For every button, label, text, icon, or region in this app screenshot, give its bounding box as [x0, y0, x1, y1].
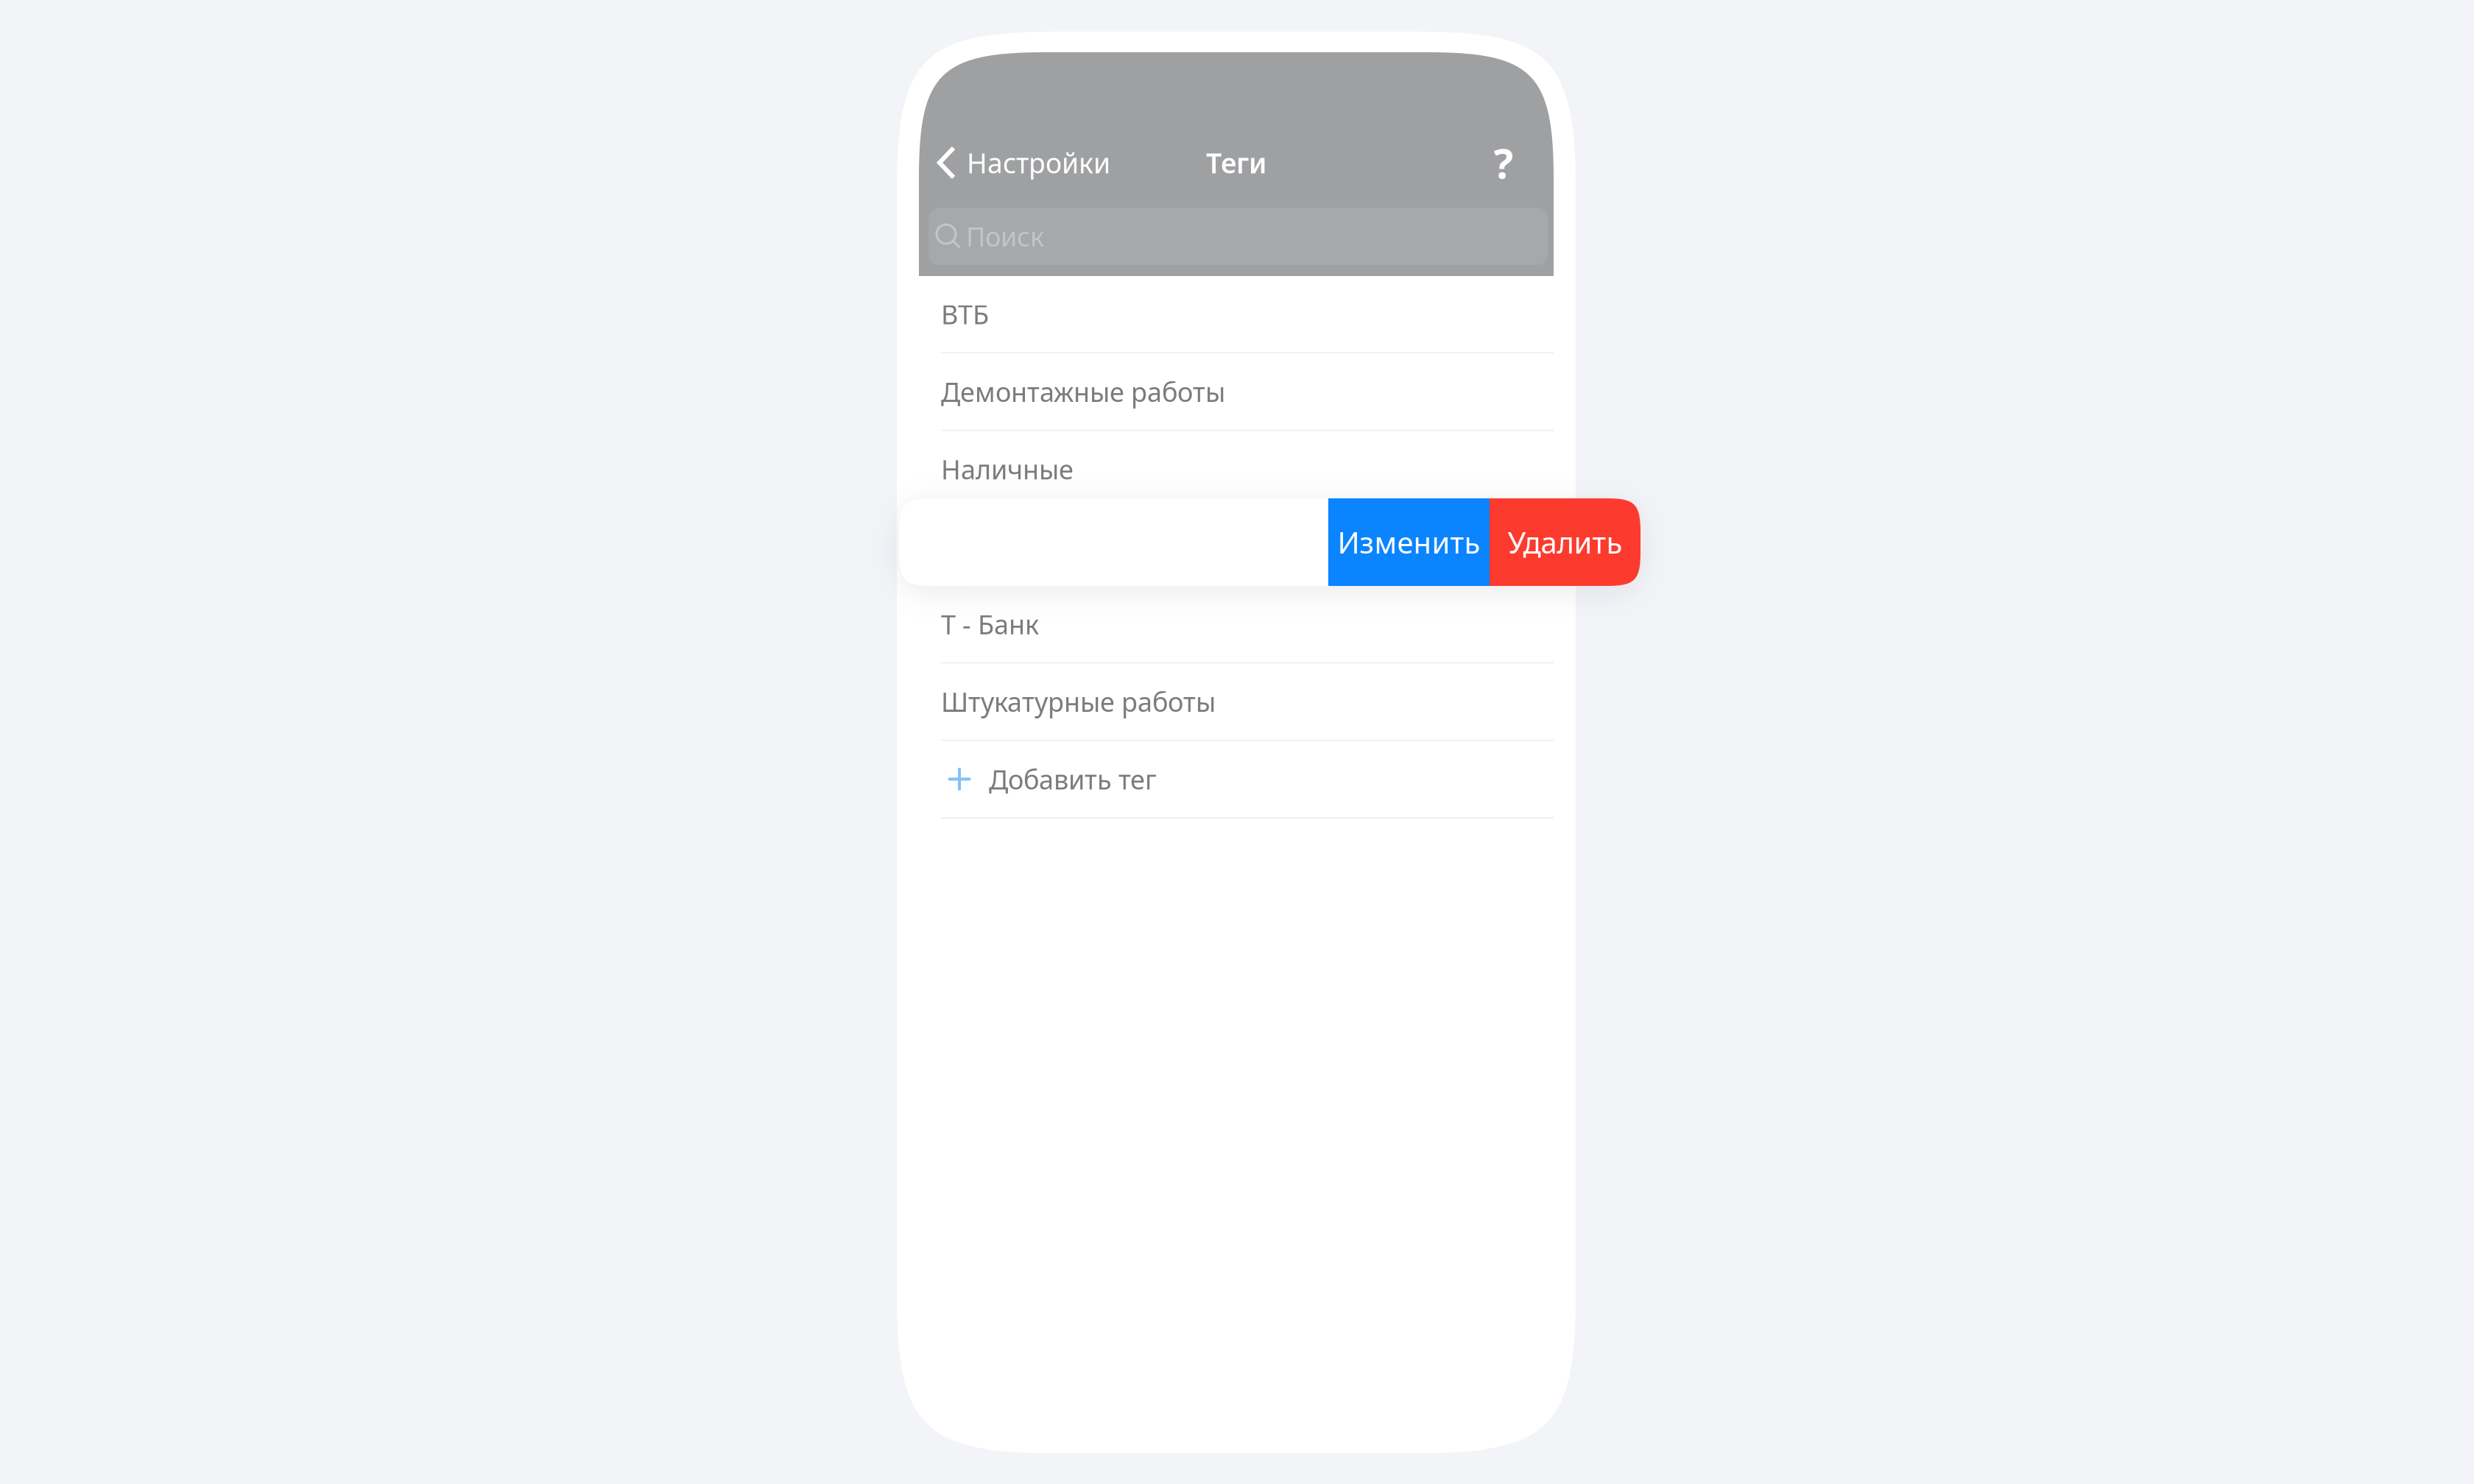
- staticText: Наличные: [941, 451, 1074, 487]
- staticText: Штукатурные работы: [941, 684, 1216, 719]
- staticText: Удалить: [1508, 523, 1622, 562]
- button[interactable]: Добавить тег: [919, 741, 1554, 819]
- button[interactable]: Штукатурные работы: [919, 664, 1554, 741]
- button[interactable]: Т - Банк: [919, 586, 1554, 664]
- staticText: Поиск: [966, 219, 1044, 254]
- button[interactable]: Help: [1481, 131, 1526, 194]
- staticText: ВТБ: [941, 296, 989, 332]
- button[interactable]: Наличные: [919, 431, 1554, 509]
- button[interactable]: Удалить: [1490, 498, 1640, 586]
- staticText: Изменить: [1338, 523, 1480, 562]
- button[interactable]: Настройки: [919, 131, 1124, 194]
- staticText: Добавить тег: [989, 762, 1157, 797]
- staticText: Демонтажные работы: [941, 374, 1225, 409]
- button[interactable]: Демонтажные работы: [919, 354, 1554, 431]
- button[interactable]: Изменить: [1328, 498, 1490, 586]
- staticText: Теги: [1206, 144, 1266, 181]
- staticText: ?: [1494, 135, 1513, 190]
- staticText: Настройки: [967, 144, 1110, 181]
- button[interactable]: ВТБ: [919, 276, 1554, 354]
- staticText: Т - Банк: [941, 606, 1039, 642]
